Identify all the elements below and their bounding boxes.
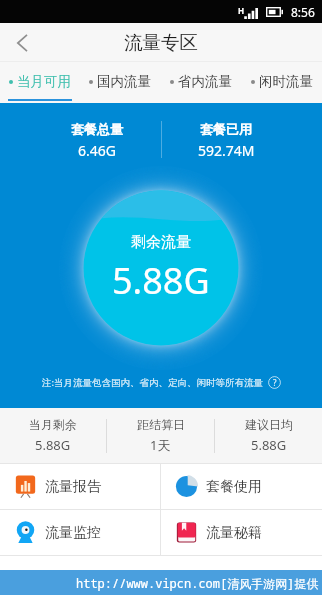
- staticText: 1天: [150, 436, 171, 454]
- staticText: 5.88G: [112, 256, 210, 305]
- button[interactable]: 套餐总量: [33, 121, 161, 160]
- staticText: 当月可用: [17, 73, 71, 90]
- staticText: 剩余流量: [131, 233, 191, 252]
- staticText: H: [238, 5, 245, 16]
- staticText: 8:56: [291, 4, 315, 20]
- staticText: 5.88G: [35, 436, 71, 454]
- button[interactable]: 流量秘籍: [161, 510, 322, 555]
- staticText: 闲时流量: [259, 73, 313, 90]
- staticText: 流量监控: [45, 524, 101, 542]
- staticText: 5.88G: [251, 436, 287, 454]
- button[interactable]: Back: [0, 23, 44, 62]
- button[interactable]: 套餐使用: [161, 464, 322, 509]
- staticText: 注:当月流量包含国内、省内、定向、闲时等所有流量: [42, 376, 264, 389]
- staticText: 套餐已用: [200, 121, 252, 137]
- staticText: 套餐总量: [71, 121, 123, 137]
- staticText: 建议日均: [245, 417, 293, 432]
- button[interactable]: 当月可用: [0, 61, 80, 102]
- staticText: ?: [273, 377, 277, 388]
- staticText: 距结算日: [137, 417, 185, 432]
- staticText: 流量专区: [124, 31, 198, 54]
- button[interactable]: 流量监控: [0, 510, 160, 555]
- staticText: 当月剩余: [29, 417, 77, 432]
- button[interactable]: Help: [268, 376, 281, 389]
- button[interactable]: 国内流量: [80, 61, 160, 102]
- button[interactable]: 套餐已用: [162, 121, 290, 160]
- staticText: http://www.vipcn.com[清风手游网]提供: [76, 575, 319, 591]
- staticText: 国内流量: [97, 73, 151, 90]
- staticText: 省内流量: [178, 73, 232, 90]
- button[interactable]: 闲时流量: [241, 61, 322, 102]
- staticText: 流量报告: [45, 478, 101, 496]
- staticText: 流量秘籍: [206, 524, 262, 542]
- button[interactable]: 流量报告: [0, 464, 160, 509]
- staticText: 592.74M: [198, 141, 255, 160]
- staticText: 套餐使用: [206, 478, 262, 496]
- button[interactable]: 距结算日: [107, 408, 214, 463]
- staticText: 6.46G: [78, 141, 116, 160]
- button[interactable]: 当月剩余: [0, 408, 106, 463]
- button[interactable]: 省内流量: [160, 61, 241, 102]
- button[interactable]: 建议日均: [215, 408, 322, 463]
